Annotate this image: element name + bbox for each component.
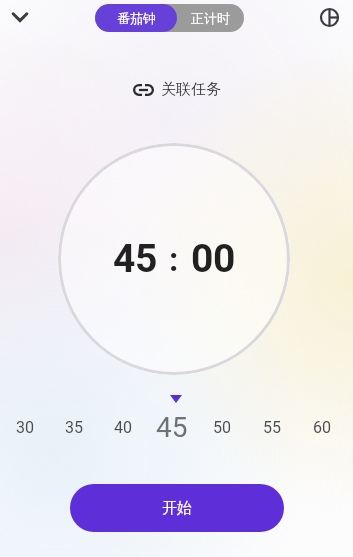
staticText: 关联任务	[161, 80, 221, 99]
button[interactable]: 60	[297, 405, 347, 449]
staticText: 35	[65, 418, 83, 437]
staticText: 45	[113, 236, 157, 282]
button[interactable]	[317, 5, 341, 29]
staticText: 30	[16, 418, 34, 437]
button[interactable]: 开始	[70, 484, 284, 532]
button[interactable]: 45	[147, 405, 197, 449]
staticText: :	[169, 240, 179, 279]
staticText: 45	[156, 411, 188, 444]
staticText: 正计时	[191, 10, 230, 26]
button[interactable]: 正计时	[177, 4, 244, 32]
staticText: 55	[263, 418, 281, 437]
button[interactable]: 关联任务	[133, 80, 221, 99]
staticText: 番茄钟	[117, 10, 156, 26]
staticText: 40	[114, 418, 132, 437]
staticText: 开始	[162, 499, 192, 518]
staticText: 50	[213, 418, 231, 437]
button[interactable]	[8, 5, 32, 29]
button[interactable]: 30	[0, 405, 49, 449]
button[interactable]: 番茄钟	[95, 4, 177, 32]
button[interactable]: 35	[49, 405, 98, 449]
button[interactable]: 50	[197, 405, 247, 449]
button[interactable]: 40	[98, 405, 147, 449]
staticText: 00	[191, 236, 235, 282]
button[interactable]: 55	[247, 405, 297, 449]
staticText: 60	[313, 418, 331, 437]
